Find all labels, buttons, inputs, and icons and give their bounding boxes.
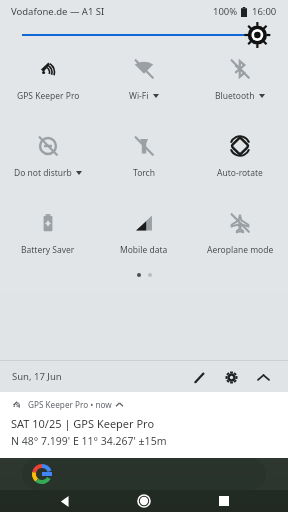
staticText: SAT 10/25 | GPS Keeper Pro (11, 416, 155, 431)
button[interactable]: Brightness (0, 22, 288, 48)
button[interactable]: Battery Saver (0, 212, 96, 256)
button[interactable]: Do not disturb (0, 135, 96, 179)
staticText: Do not disturb (14, 167, 72, 179)
button[interactable]: Recent apps (209, 490, 239, 512)
staticText: 16:00 (252, 5, 277, 18)
button[interactable]: Aeroplane mode (192, 212, 288, 256)
staticText: Bluetooth (215, 90, 255, 102)
staticText: Mobile data (120, 244, 168, 256)
button[interactable]: GPS Keeper Pro (0, 58, 96, 102)
staticText: N 48° 7.199' E 11° 34.267' ±15m (11, 434, 167, 448)
staticText: GPS Keeper Pro • now (28, 399, 112, 410)
staticText: Battery Saver (21, 244, 75, 256)
staticText: Wi-Fi (129, 90, 149, 102)
staticText: Sun, 17 Jun (12, 370, 62, 383)
staticText: GPS Keeper Pro (17, 90, 80, 102)
staticText: Torch (133, 167, 155, 179)
button[interactable]: Google search (22, 458, 266, 490)
button[interactable]: Torch (96, 135, 192, 179)
button[interactable]: Wi-Fi (96, 58, 192, 102)
staticText: 100% (213, 5, 238, 18)
button[interactable]: Auto-rotate (192, 135, 288, 179)
button[interactable]: Mobile data (96, 212, 192, 256)
button[interactable]: Settings (218, 364, 244, 390)
button[interactable]: Collapse (250, 364, 276, 390)
button[interactable]: Home (129, 490, 159, 512)
staticText: Vodafone.de — A1 SI (11, 5, 105, 18)
button[interactable]: Edit (186, 364, 212, 390)
button[interactable]: GPS Keeper Pro • now (0, 392, 288, 458)
staticText: Aeroplane mode (207, 244, 274, 256)
button[interactable]: Bluetooth (192, 58, 288, 102)
button[interactable]: Back (50, 490, 80, 512)
staticText: Auto-rotate (217, 167, 263, 179)
